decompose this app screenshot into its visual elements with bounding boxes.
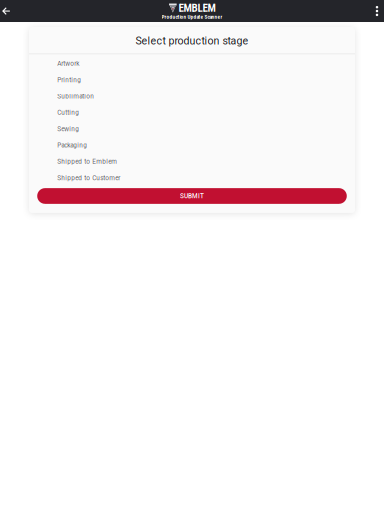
button[interactable]: Sublimation xyxy=(29,88,355,104)
staticText: Packaging xyxy=(57,142,87,149)
button[interactable]: SUBMIT xyxy=(37,188,347,204)
button[interactable]: Sewing xyxy=(29,121,355,137)
staticText: SUBMIT xyxy=(180,192,204,200)
staticText: Sewing xyxy=(57,125,79,133)
button[interactable]: Back xyxy=(0,0,12,22)
staticText: Select production stage xyxy=(135,35,248,47)
staticText: Sublimation xyxy=(57,93,94,100)
staticText: Cutting xyxy=(57,109,79,116)
button[interactable]: More options xyxy=(370,0,384,22)
button[interactable]: Artwork xyxy=(29,55,355,72)
button[interactable]: Cutting xyxy=(29,104,355,121)
button[interactable]: Shipped to Emblem xyxy=(29,153,355,170)
button[interactable]: Shipped to Customer xyxy=(29,170,355,186)
staticText: Printing xyxy=(57,76,81,84)
staticText: Shipped to Customer xyxy=(57,174,120,182)
staticText: EMBLEM xyxy=(178,1,215,14)
staticText: Artwork xyxy=(57,60,79,67)
staticText: Production Update Scanner xyxy=(161,14,222,20)
button[interactable]: Packaging xyxy=(29,137,355,153)
button[interactable]: Printing xyxy=(29,72,355,88)
staticText: Shipped to Emblem xyxy=(57,158,117,165)
